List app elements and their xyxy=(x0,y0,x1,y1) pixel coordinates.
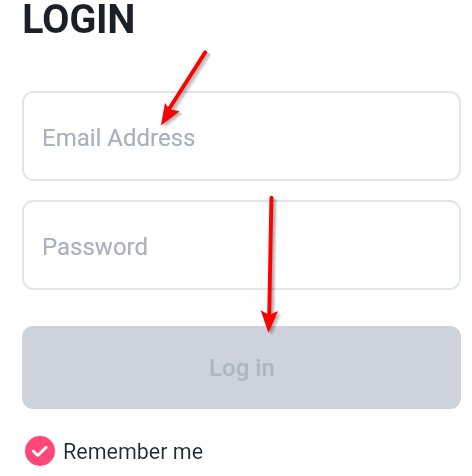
staticText: LOGIN xyxy=(22,0,135,43)
other: Remember me checkbox xyxy=(25,436,55,466)
button[interactable]: Email Address xyxy=(22,91,461,181)
button[interactable]: Password xyxy=(22,200,461,290)
button[interactable]: Remember me checkbox xyxy=(25,436,204,466)
staticText: Email Address xyxy=(42,124,196,152)
staticText: Password xyxy=(42,233,149,261)
staticText: Log in xyxy=(209,354,275,382)
staticText: Remember me xyxy=(63,439,204,464)
button[interactable]: Log in xyxy=(22,326,461,409)
